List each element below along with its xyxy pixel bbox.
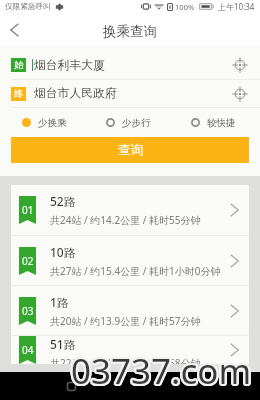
- button[interactable]: Locate: [229, 83, 251, 105]
- staticText: 02: [22, 254, 34, 268]
- staticText: 03737.com: [73, 348, 254, 396]
- staticText: 03737.com: [70, 348, 251, 396]
- button[interactable]: 始: [0, 51, 260, 79]
- staticText: 少步行: [122, 117, 151, 129]
- staticText: 03737.com: [69, 348, 250, 396]
- staticText: 100%: [175, 2, 195, 12]
- staticText: 03737.com: [72, 346, 253, 394]
- staticText: 04: [22, 343, 34, 357]
- staticText: 03737.com: [70, 345, 251, 393]
- staticText: 03737.com: [70, 347, 251, 395]
- staticText: 03737.com: [71, 348, 252, 396]
- staticText: 03737.com: [73, 347, 254, 395]
- button[interactable]: Locate: [229, 54, 251, 76]
- staticText: 共24站 / 约14.2公里 / 耗时55分钟: [50, 213, 201, 227]
- staticText: 03737.com: [71, 345, 252, 393]
- staticText: 上午10:34: [218, 1, 255, 12]
- button[interactable]: 03: [11, 286, 249, 335]
- staticText: 03737.com: [73, 346, 254, 394]
- staticText: 10路: [50, 244, 76, 260]
- staticText: 少换乘: [38, 117, 67, 129]
- staticText: 终: [14, 88, 24, 100]
- button[interactable]: 04: [11, 336, 249, 364]
- button[interactable]: Back: [0, 15, 29, 45]
- staticText: 03737.com: [71, 347, 252, 395]
- button[interactable]: 较快捷: [191, 108, 236, 137]
- button[interactable]: 终: [0, 80, 260, 107]
- staticText: 03737.com: [70, 349, 251, 397]
- staticText: 共27站 / 约15.4公里 / 耗时1小时0分钟: [50, 264, 221, 278]
- staticText: 51路: [50, 336, 76, 352]
- staticText: 换乘查询: [103, 23, 157, 40]
- staticText: 03737.com: [71, 346, 252, 394]
- button[interactable]: 02: [11, 236, 249, 285]
- staticText: 共20站 / 约13.9公里 / 耗时57分钟: [50, 314, 201, 328]
- staticText: 03737.com: [69, 347, 250, 395]
- staticText: 52路: [50, 193, 76, 209]
- staticText: 烟台利丰大厦: [34, 58, 105, 73]
- staticText: 仅限紧急呼叫: [5, 2, 51, 12]
- staticText: 较快捷: [207, 117, 236, 129]
- staticText: 03737.com: [72, 348, 253, 396]
- staticText: 03737.com: [72, 347, 253, 395]
- staticText: 查询: [118, 142, 143, 158]
- button[interactable]: 少步行: [106, 108, 151, 137]
- staticText: 03737.com: [71, 349, 252, 397]
- staticText: 01: [22, 203, 34, 217]
- staticText: 03737.com: [72, 345, 253, 393]
- button[interactable]: Recents: [67, 382, 76, 391]
- button[interactable]: 少换乘: [22, 108, 67, 137]
- staticText: 烟台市人民政府: [34, 86, 117, 101]
- staticText: 共22站 / 约14.0公里 / 耗时58分钟: [50, 356, 201, 364]
- staticText: 03737.com: [70, 346, 251, 394]
- button[interactable]: 01: [11, 185, 249, 235]
- staticText: 03737.com: [69, 346, 250, 394]
- staticText: 03737.com: [72, 349, 253, 397]
- button[interactable]: 查询: [11, 137, 249, 163]
- staticText: 03: [22, 304, 34, 318]
- staticText: 1路: [50, 294, 69, 310]
- staticText: 始: [14, 59, 24, 71]
